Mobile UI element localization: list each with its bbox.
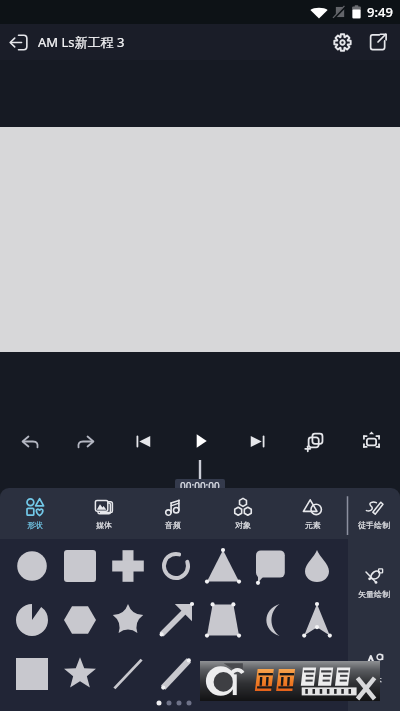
staticText: 媒体 — [96, 520, 112, 530]
staticText: 徒手绘制 — [358, 520, 390, 530]
button[interactable]: Shape 21 — [293, 647, 340, 701]
staticText: 9:49 — [367, 3, 393, 21]
button[interactable]: Skip to start — [115, 421, 172, 461]
button[interactable]: Redo — [58, 421, 115, 461]
button[interactable]: Shape 9 — [56, 593, 104, 647]
staticText: 文本 — [366, 675, 382, 685]
staticText: 对象 — [235, 520, 251, 530]
button[interactable]: 音频 — [138, 488, 208, 539]
button[interactable]: Shape 10 — [104, 593, 152, 647]
button[interactable]: Shape 11 — [152, 593, 199, 647]
button[interactable]: Shape 20 — [246, 647, 293, 701]
button[interactable]: Shape 2 — [56, 539, 104, 593]
button[interactable]: Export — [362, 26, 394, 58]
button[interactable]: 元素 — [278, 488, 348, 539]
button[interactable]: Shape 1 — [8, 539, 56, 593]
button[interactable]: Shape 16 — [56, 647, 104, 701]
staticText: AM Ls新工程 3 — [38, 33, 125, 51]
staticText: 00:00:00 — [180, 479, 220, 493]
button[interactable]: Shape 6 — [246, 539, 293, 593]
button[interactable]: 形状 — [0, 488, 69, 539]
button[interactable]: 对象 — [208, 488, 278, 539]
button[interactable]: Shape 7 — [293, 539, 340, 593]
button[interactable]: Shape 15 — [8, 647, 56, 701]
button[interactable]: 矢量绘制 — [348, 539, 400, 625]
button[interactable]: Shape 8 — [8, 593, 56, 647]
button[interactable]: 徒手绘制 — [348, 488, 400, 539]
button[interactable]: Play — [172, 421, 229, 461]
button[interactable]: Transform — [343, 421, 400, 461]
button[interactable]: Shape 13 — [246, 593, 293, 647]
button[interactable]: Settings — [326, 26, 358, 58]
staticText: 音频 — [165, 520, 181, 530]
button[interactable]: Shape 14 — [293, 593, 340, 647]
staticText: 元素 — [305, 520, 321, 530]
button[interactable]: Shape 4 — [152, 539, 199, 593]
button[interactable]: Undo — [0, 421, 58, 461]
button[interactable]: Shape 12 — [199, 593, 246, 647]
button[interactable]: Skip to end — [229, 421, 286, 461]
staticText: 矢量绘制 — [358, 589, 390, 599]
button[interactable]: Shape 19 — [199, 647, 246, 701]
button[interactable]: Shape 17 — [104, 647, 152, 701]
button[interactable]: 媒体 — [69, 488, 138, 539]
button[interactable]: 文本 — [348, 625, 400, 711]
button[interactable]: Shape 3 — [104, 539, 152, 593]
button[interactable]: Shape 5 — [199, 539, 246, 593]
button[interactable]: Back — [5, 29, 31, 55]
staticText: 形状 — [27, 520, 43, 530]
button[interactable]: Shape 18 — [152, 647, 199, 701]
button[interactable]: Duplicate — [286, 421, 343, 461]
